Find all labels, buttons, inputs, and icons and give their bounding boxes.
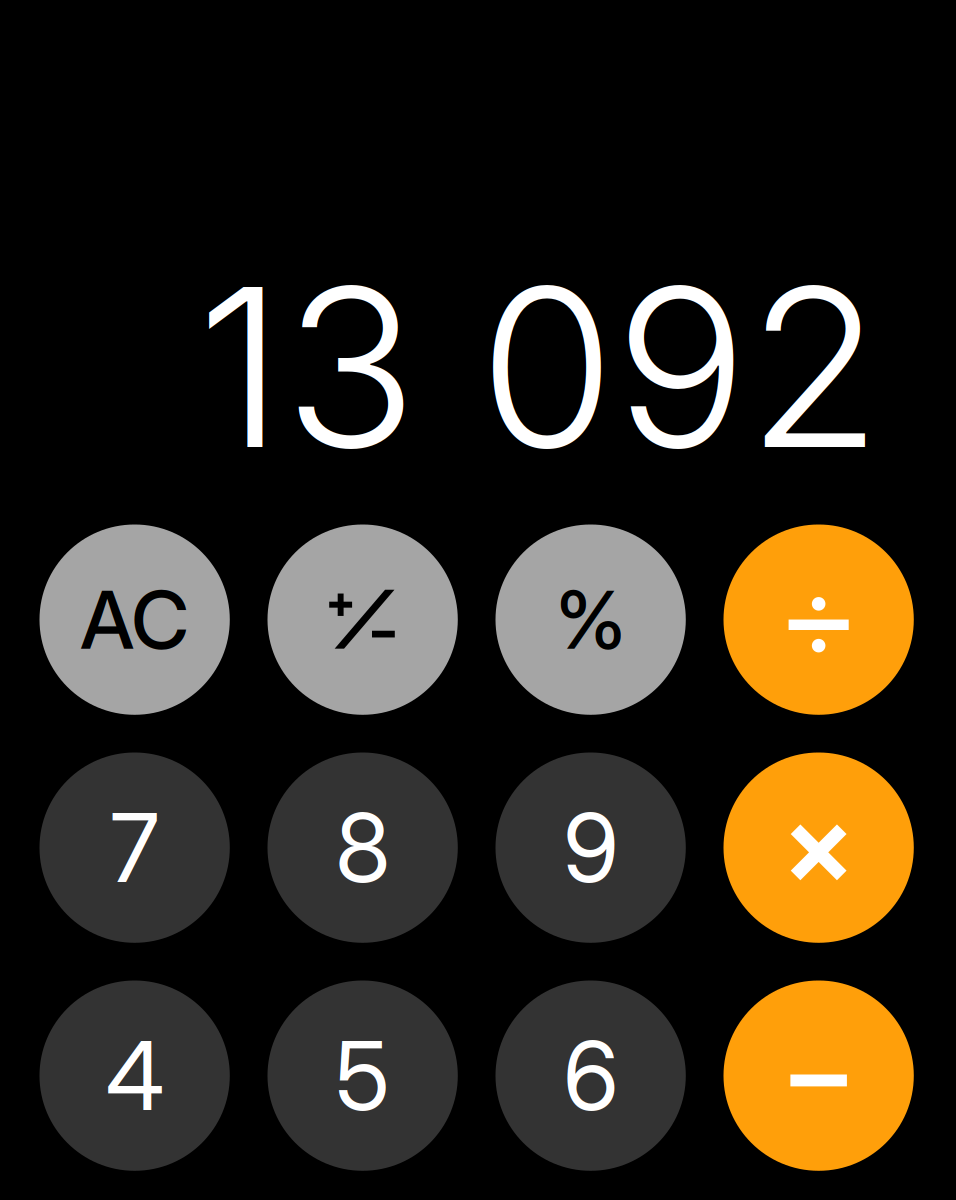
staticText: 6 (563, 1018, 618, 1133)
staticText: 7 (110, 790, 159, 905)
button[interactable]: 9 (495, 752, 686, 943)
button[interactable]: Subtract (723, 980, 914, 1171)
button[interactable]: Plus Minus (267, 524, 458, 715)
staticText: 13 092 (197, 234, 882, 500)
button[interactable]: AC (39, 524, 230, 715)
staticText: 9 (563, 790, 618, 905)
staticText: AC (80, 571, 189, 668)
button[interactable]: % (495, 524, 686, 715)
button[interactable]: Multiply (723, 752, 914, 943)
button[interactable]: 8 (267, 752, 458, 943)
staticText: 5 (335, 1018, 390, 1133)
button[interactable]: 5 (267, 980, 458, 1171)
button[interactable]: Divide (723, 524, 914, 715)
staticText: % (556, 571, 626, 668)
staticText: 8 (335, 790, 390, 905)
button[interactable]: 7 (39, 752, 230, 943)
button[interactable]: 4 (39, 980, 230, 1171)
button[interactable]: 6 (495, 980, 686, 1171)
staticText: 4 (106, 1018, 164, 1133)
